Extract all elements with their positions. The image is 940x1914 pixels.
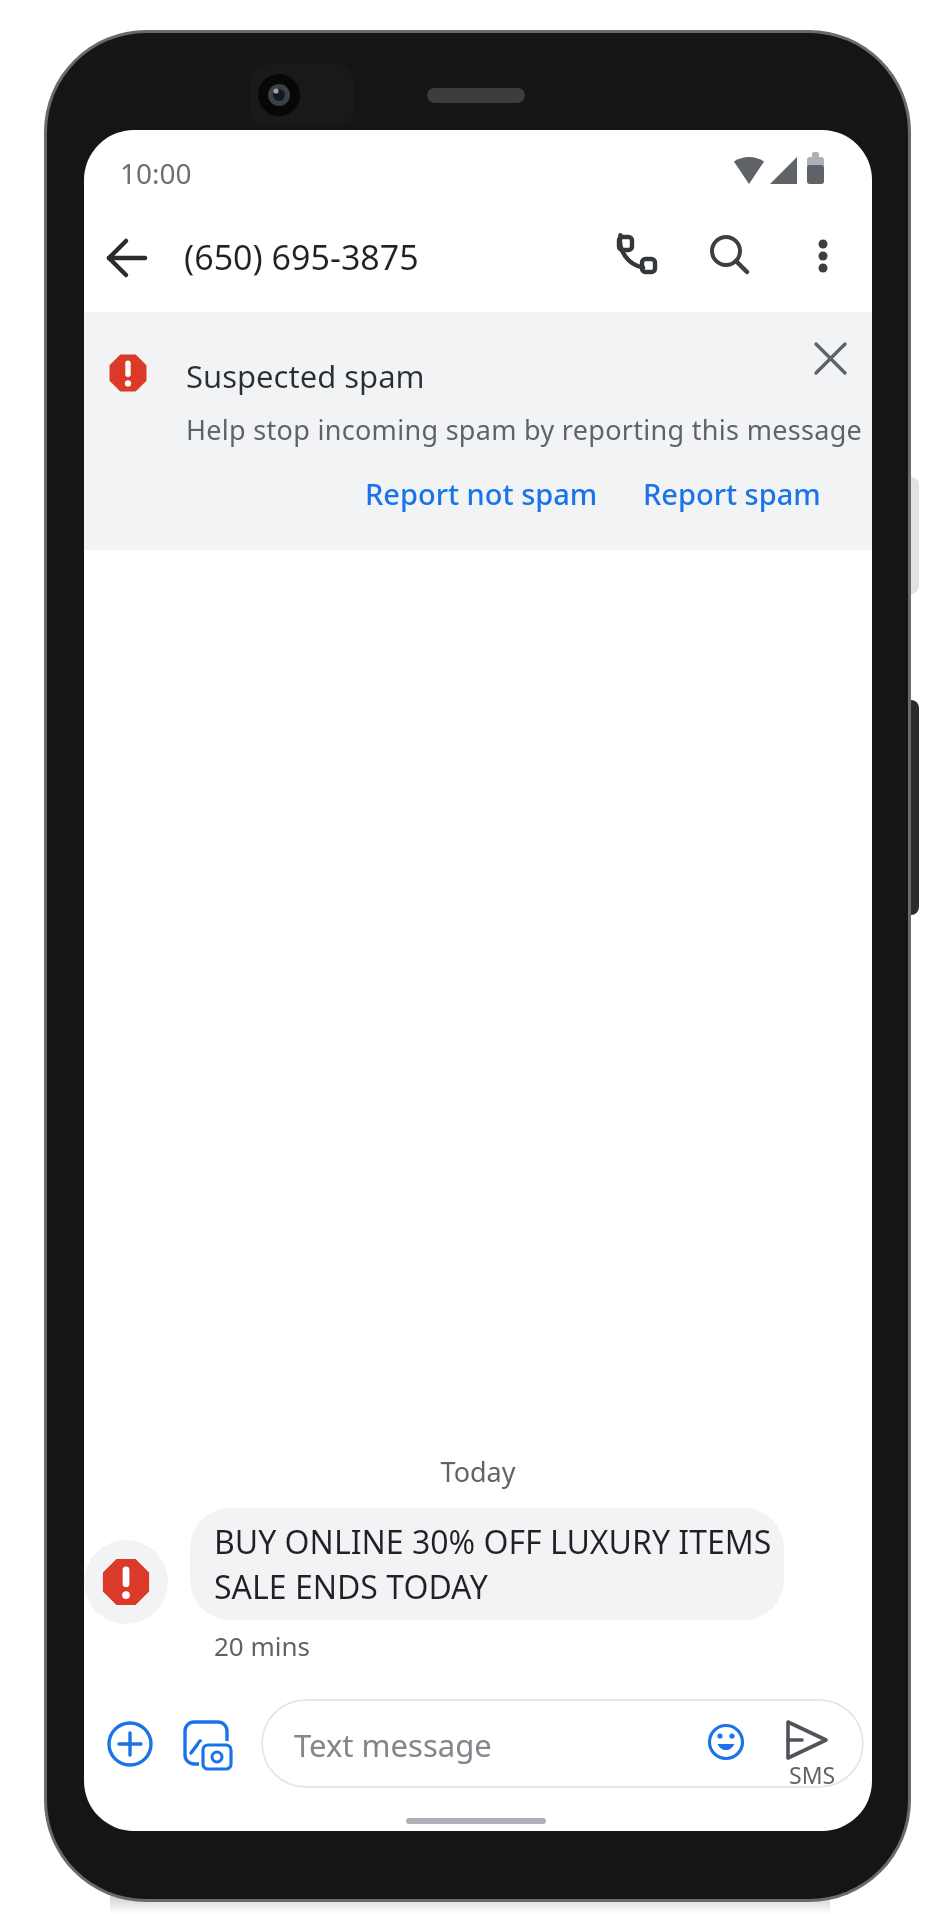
staticText: 10:00 [120, 154, 192, 192]
staticText: 20 mins [214, 1628, 311, 1663]
staticText: Report not spam [365, 474, 598, 513]
staticText: Report spam [643, 474, 821, 513]
staticText: Help stop incoming spam by reporting thi… [186, 411, 863, 448]
staticText: SMS [789, 1759, 836, 1790]
staticText: Text message [294, 1724, 492, 1766]
staticText: Suspected spam [186, 355, 425, 397]
staticText: BUY ONLINE 30% OFF LUXURY ITEMS SALE END… [214, 1520, 772, 1609]
staticText: (650) 695-3875 [184, 234, 419, 280]
staticText: Today [84, 1453, 872, 1490]
